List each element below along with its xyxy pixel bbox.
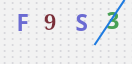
button[interactable]: CAPTCHA image, tap to refresh bbox=[0, 0, 132, 64]
